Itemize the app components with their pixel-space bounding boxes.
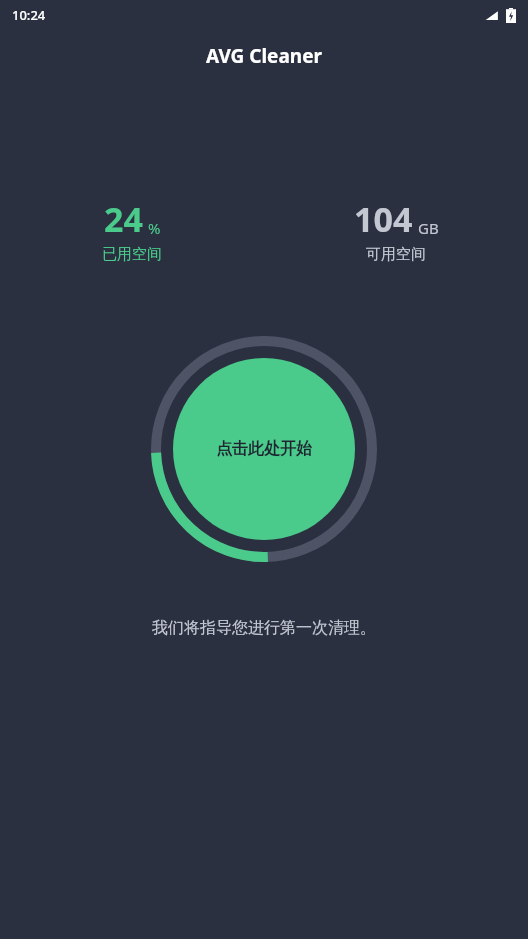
- staticText: AVG Cleaner: [206, 43, 323, 69]
- other: Battery charging: [506, 8, 516, 23]
- staticText: 点击此处开始: [216, 439, 312, 459]
- staticText: 24: [104, 196, 143, 242]
- button[interactable]: 点击此处开始: [173, 358, 355, 540]
- other: Signal strength: [485, 9, 499, 23]
- staticText: %: [148, 218, 161, 238]
- staticText: 可用空间: [366, 245, 426, 264]
- staticText: 我们将指导您进行第一次清理。: [0, 618, 528, 638]
- staticText: 已用空间: [102, 245, 162, 264]
- staticText: GB: [418, 218, 439, 238]
- staticText: 104: [354, 196, 413, 242]
- staticText: 10:24: [12, 6, 46, 24]
